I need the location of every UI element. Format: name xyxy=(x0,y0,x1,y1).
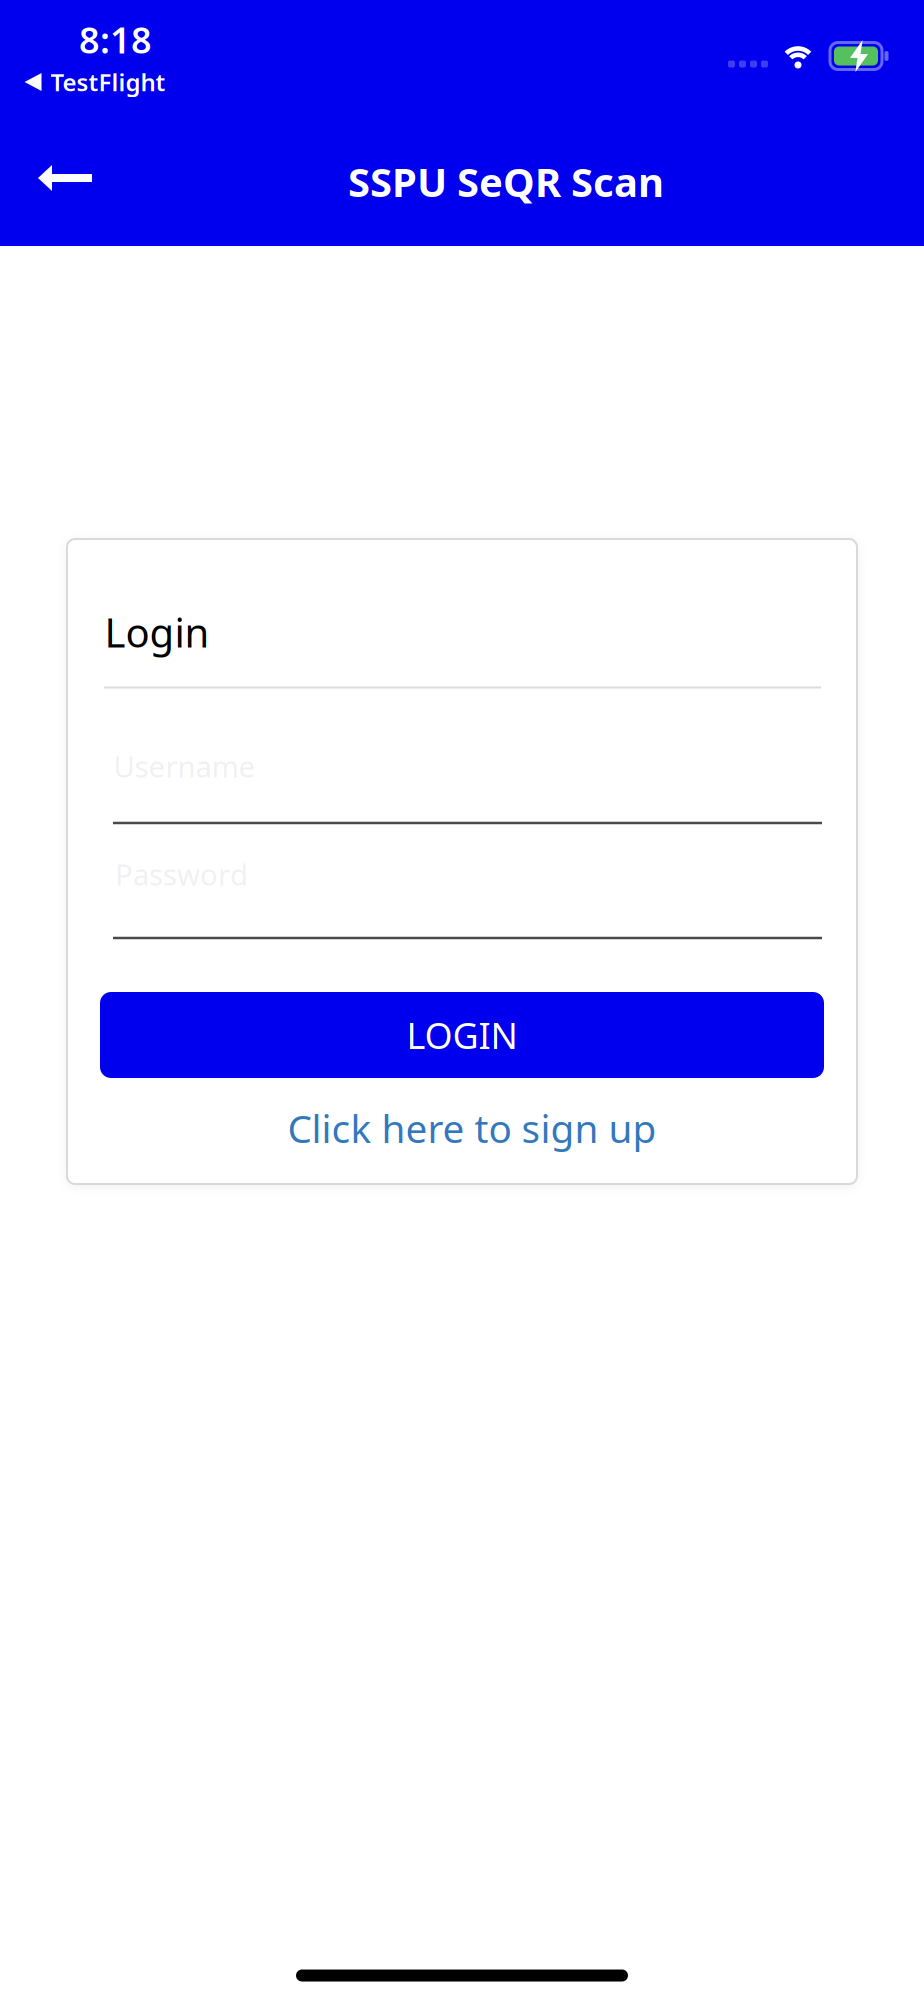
staticText: Username xyxy=(113,746,255,785)
staticText: Password xyxy=(115,854,248,893)
staticText: SSPU SeQR Scan xyxy=(348,155,664,208)
button[interactable]: Back xyxy=(38,165,92,191)
staticText: TestFlight xyxy=(50,66,165,98)
staticText: Click here to sign up xyxy=(287,1102,656,1154)
staticText: LOGIN xyxy=(406,1011,517,1059)
staticText: Login xyxy=(104,605,209,658)
button[interactable]: TestFlight xyxy=(24,66,165,98)
staticText: 8:18 xyxy=(79,16,152,63)
button[interactable]: Click here to sign up xyxy=(287,1102,656,1154)
button[interactable]: LOGIN xyxy=(100,992,824,1078)
